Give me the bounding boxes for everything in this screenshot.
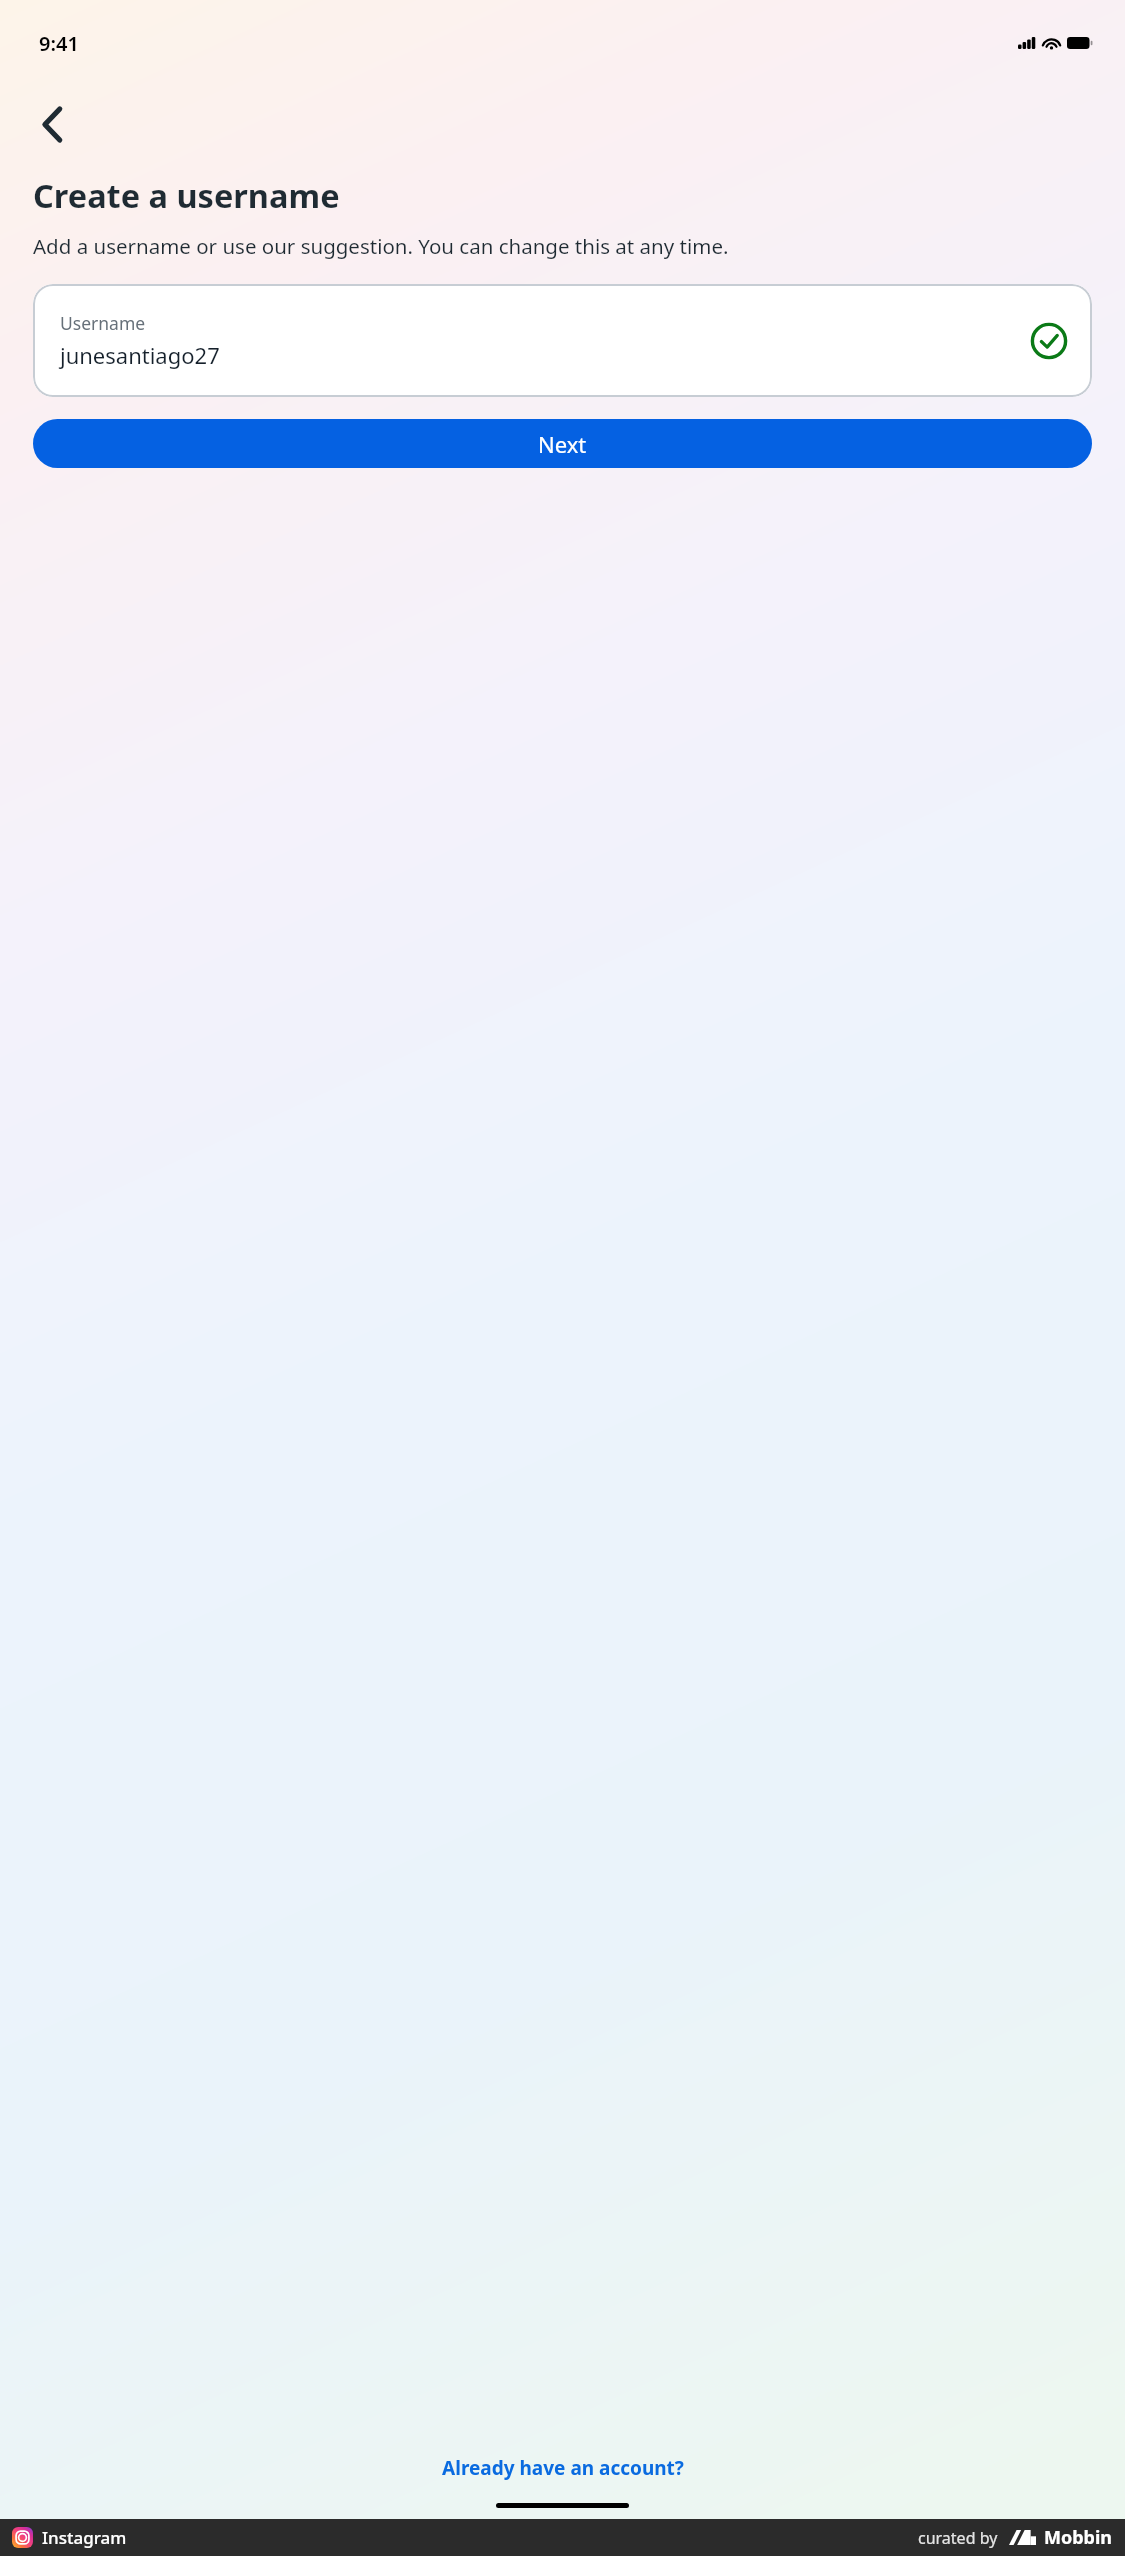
staticText: Next — [538, 429, 587, 459]
staticText: 9:41 — [39, 30, 79, 57]
staticText: junesantiago27 — [60, 340, 220, 370]
staticText: curated by — [918, 2527, 998, 2549]
button[interactable]: Back — [25, 99, 79, 149]
staticText: Username — [60, 311, 146, 335]
staticText: Instagram — [42, 2526, 127, 2549]
staticText: Create a username — [33, 173, 340, 217]
button[interactable]: Username — [33, 284, 1092, 397]
staticText: Add a username or use our suggestion. Yo… — [33, 232, 729, 260]
button[interactable]: Already have an account? — [430, 2448, 696, 2488]
staticText: Already have an account? — [442, 2455, 684, 2481]
button[interactable]: Next — [33, 419, 1092, 468]
staticText: Mobbin — [1044, 2525, 1113, 2550]
